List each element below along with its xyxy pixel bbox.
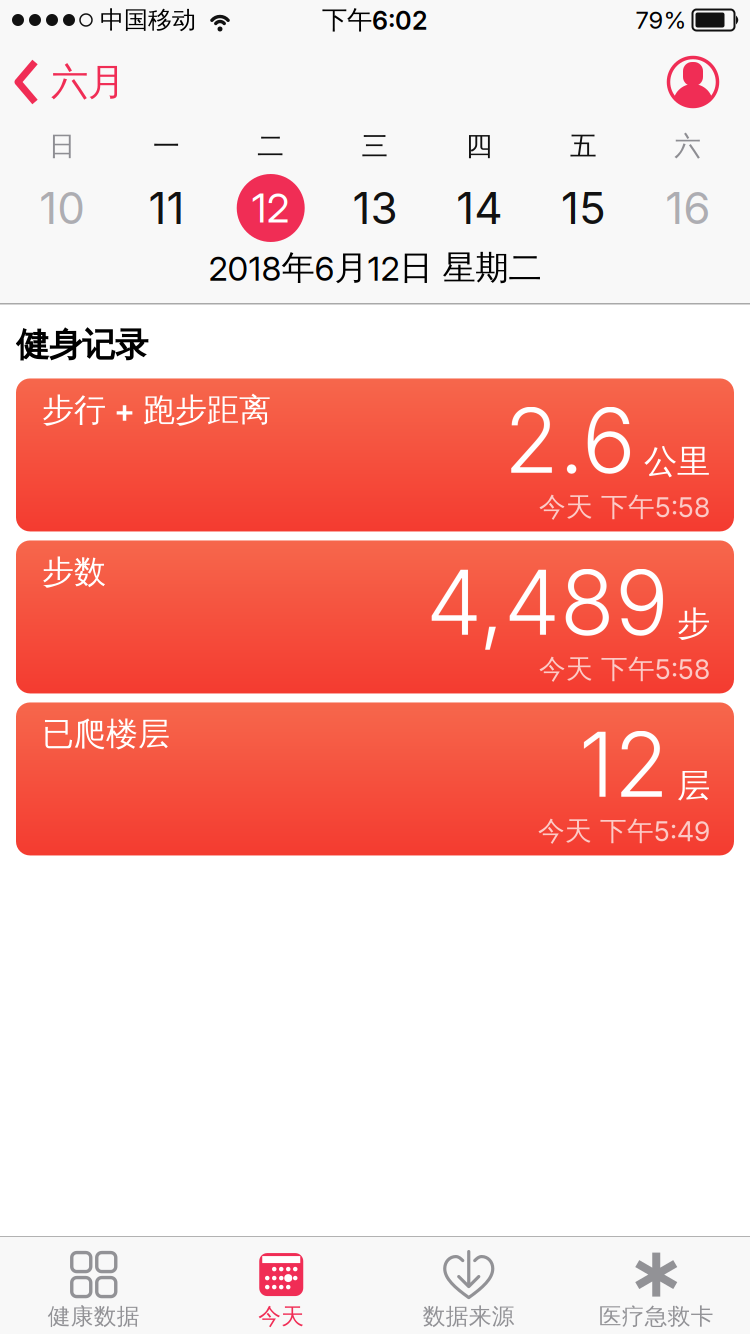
staticText: 4,489 <box>426 549 669 655</box>
staticText: 11 <box>148 182 184 234</box>
staticText: 医疗急救卡 <box>599 1303 714 1330</box>
staticText: 一 <box>153 130 180 162</box>
staticText: 下午6:02 <box>322 4 428 35</box>
button[interactable]: 步数 <box>16 540 734 693</box>
staticText: 已爬楼层 <box>42 714 170 754</box>
staticText: 13 <box>352 182 397 234</box>
button[interactable]: 医疗急救卡 <box>562 1241 750 1330</box>
button[interactable]: 10 <box>10 182 114 234</box>
staticText: 14 <box>456 182 502 234</box>
button[interactable]: 14 <box>427 182 531 234</box>
button[interactable]: 健康数据 <box>0 1241 187 1330</box>
staticText: 中国移动 <box>100 5 196 35</box>
staticText: 今天 下午5:58 <box>539 491 710 523</box>
staticText: 2018年6月12日 星期二 <box>208 247 541 288</box>
staticText: 今天 下午5:58 <box>539 653 710 685</box>
button[interactable]: 六月 <box>0 59 125 105</box>
staticText: 今天 <box>258 1303 304 1330</box>
staticText: 79% <box>635 6 686 34</box>
button[interactable] <box>667 56 750 108</box>
button[interactable]: 数据来源 <box>375 1241 562 1330</box>
staticText: 公里 <box>644 441 710 482</box>
button[interactable]: 已爬楼层 <box>16 702 734 855</box>
staticText: 今天 下午5:49 <box>538 815 710 847</box>
staticText: 六 <box>674 130 701 162</box>
button[interactable]: 13 <box>323 182 427 234</box>
staticText: 步行 + 跑步距离 <box>42 390 271 430</box>
staticText: 16 <box>665 182 710 234</box>
staticText: 2.6 <box>504 387 636 493</box>
staticText: 五 <box>570 130 597 162</box>
staticText: 六月 <box>51 59 125 105</box>
button[interactable]: 今天 <box>187 1241 375 1330</box>
staticText: 步数 <box>42 552 106 592</box>
staticText: 四 <box>466 130 493 162</box>
staticText: 12 <box>252 184 290 232</box>
staticText: 15 <box>561 182 606 234</box>
button[interactable]: 16 <box>636 182 740 234</box>
staticText: 二 <box>257 130 284 162</box>
button[interactable]: 步行 + 跑步距离 <box>16 378 734 531</box>
staticText: 三 <box>361 130 388 162</box>
staticText: 层 <box>677 765 710 806</box>
staticText: 数据来源 <box>423 1303 515 1330</box>
button[interactable]: 15 <box>531 182 636 234</box>
staticText: 健康数据 <box>48 1303 140 1330</box>
button[interactable]: 12 <box>219 174 323 242</box>
staticText: 日 <box>49 130 76 162</box>
staticText: 12 <box>579 711 669 817</box>
button[interactable]: 11 <box>114 182 219 234</box>
staticText: 健身记录 <box>16 324 148 365</box>
staticText: 步 <box>677 603 710 644</box>
staticText: 10 <box>39 182 85 234</box>
